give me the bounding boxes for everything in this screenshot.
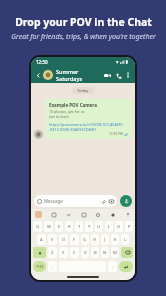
button[interactable]: K (111, 234, 119, 245)
staticText: R (68, 224, 71, 230)
staticText: , (52, 264, 54, 269)
staticText: 12:30 (36, 59, 48, 65)
button[interactable]: S (48, 234, 57, 245)
staticText: B (94, 250, 97, 256)
button[interactable]: V (81, 247, 89, 258)
staticText: S (51, 237, 54, 243)
staticText: V (84, 250, 87, 256)
staticText: T (78, 224, 81, 230)
button[interactable]: Example POV Camera (45, 99, 132, 139)
staticText: Great for friends, trips, & when you're … (11, 32, 156, 42)
button[interactable]: B (91, 247, 99, 258)
button[interactable]: X (59, 247, 68, 258)
button[interactable]: Summer Saturdays (56, 68, 102, 82)
staticText: 15 photos, just for us (49, 109, 85, 114)
staticText: L (124, 237, 127, 243)
staticText: H (93, 237, 97, 243)
button[interactable]: , (48, 261, 57, 272)
button[interactable]: Video call (102, 70, 113, 81)
button[interactable]: Keyboard tool 3 (80, 211, 87, 218)
button[interactable]: T (75, 221, 83, 232)
button[interactable]: J (101, 234, 109, 245)
staticText: G (83, 237, 87, 243)
button[interactable]: Keyboard theme (35, 211, 42, 218)
staticText: Q (36, 224, 40, 230)
staticText: A (40, 237, 43, 243)
button[interactable]: Shift (33, 247, 46, 258)
button[interactable]: Sender avatar (34, 130, 43, 139)
staticText: F (73, 237, 76, 243)
button[interactable]: U (95, 221, 103, 232)
button[interactable]: More options (124, 71, 132, 79)
button[interactable]: A (37, 234, 46, 245)
staticText: M (113, 250, 117, 256)
staticText: U (97, 224, 101, 230)
staticText: E (58, 224, 61, 230)
staticText: N (103, 250, 107, 256)
button[interactable]: Keyboard tool 5 (109, 211, 116, 218)
staticText: P (128, 224, 131, 230)
staticText: -8E1C-8949-50AE93CDA9D (49, 127, 96, 132)
staticText: Y (88, 224, 91, 230)
staticText: W (47, 224, 51, 230)
button[interactable]: M (111, 247, 119, 258)
staticText: Example POV Camera (49, 102, 97, 108)
button[interactable]: O (115, 221, 123, 232)
button[interactable]: Group photo (43, 70, 53, 80)
button[interactable]: Voice message (120, 195, 132, 207)
button[interactable]: I (105, 221, 113, 232)
button[interactable]: Back (34, 71, 43, 80)
button[interactable]: Q (33, 221, 42, 232)
button[interactable]: W (44, 221, 53, 232)
button[interactable]: . (108, 261, 117, 272)
button[interactable]: G (81, 234, 89, 245)
button[interactable]: ?123 (33, 261, 46, 272)
button[interactable]: D (59, 234, 68, 245)
staticText: D (62, 237, 66, 243)
staticText: 12:30 PM (109, 132, 123, 136)
button[interactable]: P (125, 221, 133, 232)
button[interactable]: R (65, 221, 73, 232)
staticText: K (114, 237, 117, 243)
staticText: I (108, 224, 110, 230)
button[interactable]: Keyboard tool 4 (94, 211, 101, 218)
staticText: Z (51, 250, 54, 256)
button[interactable]: Backspace (121, 247, 133, 258)
button[interactable]: Keyboard tool 1 (50, 211, 57, 218)
staticText: https://povcamera.io/r/9G09E1C0-A5AF81 (49, 122, 124, 127)
button[interactable]: Keyboard tool 6 (124, 211, 131, 218)
staticText: Drop your POV in the Chat (15, 15, 152, 29)
button[interactable]: Z (48, 247, 57, 258)
button[interactable]: C (70, 247, 79, 258)
button[interactable]: H (91, 234, 99, 245)
staticText: J (104, 237, 106, 243)
staticText: ?123 (36, 264, 44, 269)
staticText: Today (77, 88, 89, 93)
staticText: Join to share (49, 114, 69, 119)
button[interactable]: Y (85, 221, 93, 232)
button[interactable]: Voice call (113, 70, 124, 81)
staticText: Message (44, 198, 63, 204)
button[interactable]: Keyboard tool 2 (65, 211, 72, 218)
staticText: Summer Saturdays (56, 68, 102, 82)
button[interactable]: E (55, 221, 63, 232)
button[interactable]: L (121, 234, 129, 245)
button[interactable]: Enter (119, 261, 133, 272)
staticText: X (62, 250, 65, 256)
staticText: C (73, 250, 76, 256)
button[interactable]: Message (34, 195, 117, 207)
button[interactable]: F (70, 234, 79, 245)
staticText: . (112, 264, 114, 269)
staticText: O (117, 224, 121, 230)
button[interactable]: N (101, 247, 109, 258)
